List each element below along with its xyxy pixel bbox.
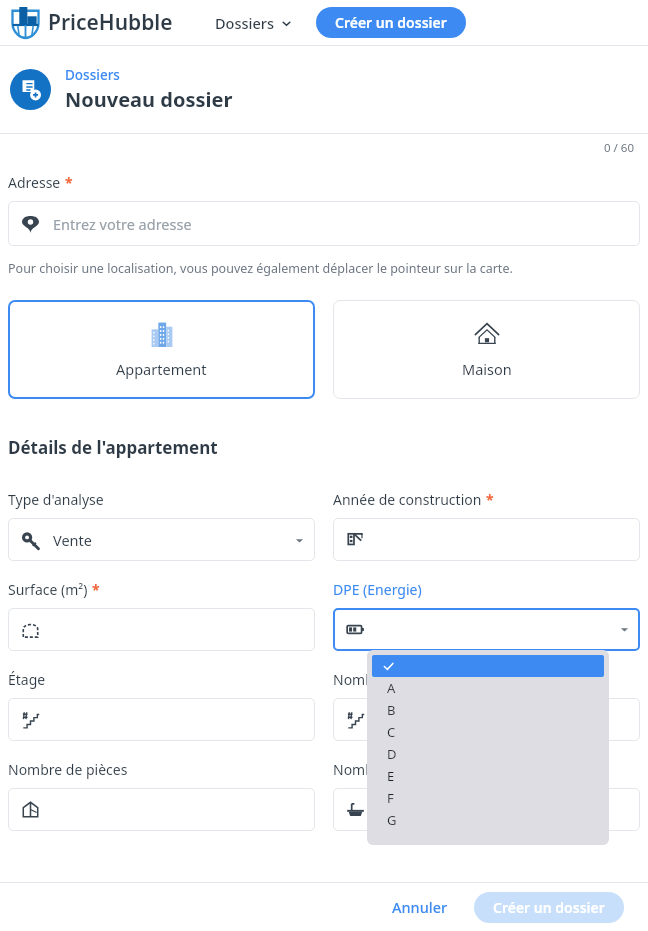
button[interactable]: B — [367, 699, 609, 721]
staticText: Créer un dossier — [493, 898, 605, 917]
staticText: Annuler — [392, 897, 448, 917]
button[interactable] — [8, 698, 315, 741]
button[interactable]: Dossiers — [65, 66, 120, 84]
staticText: * — [65, 173, 73, 192]
staticText: Nombre de salles de bain — [333, 760, 500, 779]
button[interactable] — [333, 698, 640, 741]
button[interactable]: Créer un dossier — [316, 7, 466, 38]
button[interactable] — [333, 518, 640, 561]
staticText: Type d'analyse — [8, 490, 104, 509]
staticText: 0 / 60 — [604, 140, 634, 156]
staticText: Vente — [53, 530, 92, 550]
staticText: Appartement — [116, 359, 207, 379]
button[interactable]: Maison — [333, 300, 640, 399]
staticText: Année de construction — [333, 490, 482, 509]
staticText: B — [387, 701, 396, 719]
staticText: PriceHubble — [48, 8, 173, 37]
button[interactable]: Entrez votre adresse — [8, 201, 640, 246]
staticText: Maison — [462, 359, 512, 379]
staticText: A — [387, 679, 396, 697]
staticText: Nombre d'étages — [333, 670, 446, 689]
staticText: Nouveau dossier — [65, 86, 233, 113]
staticText: * — [486, 490, 494, 509]
button[interactable]: C — [367, 721, 609, 743]
staticText: E — [387, 767, 395, 785]
button[interactable]: Annuler — [382, 891, 458, 923]
staticText: D — [387, 745, 397, 763]
button[interactable]: F — [367, 787, 609, 809]
staticText: Détails de l'appartement — [8, 436, 218, 459]
staticText: Entrez votre adresse — [53, 214, 192, 234]
staticText: G — [387, 811, 397, 829]
staticText: Nombre de pièces — [8, 760, 128, 779]
staticText: Étage — [8, 670, 46, 689]
button[interactable]: G — [367, 809, 609, 831]
staticText: F — [387, 789, 394, 807]
button[interactable]: E — [367, 765, 609, 787]
button[interactable]: Créer un dossier — [474, 892, 624, 923]
button[interactable] — [372, 655, 604, 677]
staticText: Surface (m²) — [8, 580, 88, 599]
button[interactable]: Dossiers — [209, 7, 298, 39]
button[interactable] — [8, 608, 315, 651]
button[interactable] — [333, 788, 640, 831]
staticText: Dossiers — [215, 13, 274, 33]
staticText: Créer un dossier — [335, 13, 447, 32]
button[interactable]: A — [367, 677, 609, 699]
staticText: C — [387, 723, 396, 741]
button[interactable] — [333, 608, 640, 651]
staticText: DPE (Energie) — [333, 580, 422, 599]
staticText: Adresse — [8, 173, 61, 192]
staticText: Pour choisir une localisation, vous pouv… — [8, 260, 513, 277]
button[interactable] — [8, 788, 315, 831]
button[interactable]: Appartement — [8, 300, 315, 399]
button[interactable]: D — [367, 743, 609, 765]
button[interactable]: Vente — [8, 518, 315, 561]
staticText: * — [92, 580, 100, 599]
